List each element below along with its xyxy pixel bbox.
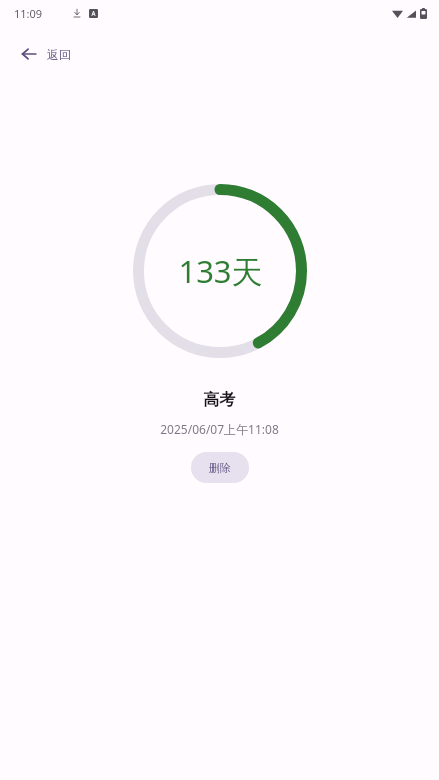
staticText: 返回 [47, 47, 71, 62]
staticText: 11:09 [14, 6, 43, 21]
staticText: 删除 [209, 461, 231, 475]
staticText: 高考 [0, 390, 439, 410]
staticText: 2025/06/07上午11:08 [0, 421, 439, 437]
button[interactable]: 返回 [14, 40, 77, 68]
button[interactable]: 删除 [191, 452, 249, 483]
staticText: 133天 [178, 250, 263, 292]
